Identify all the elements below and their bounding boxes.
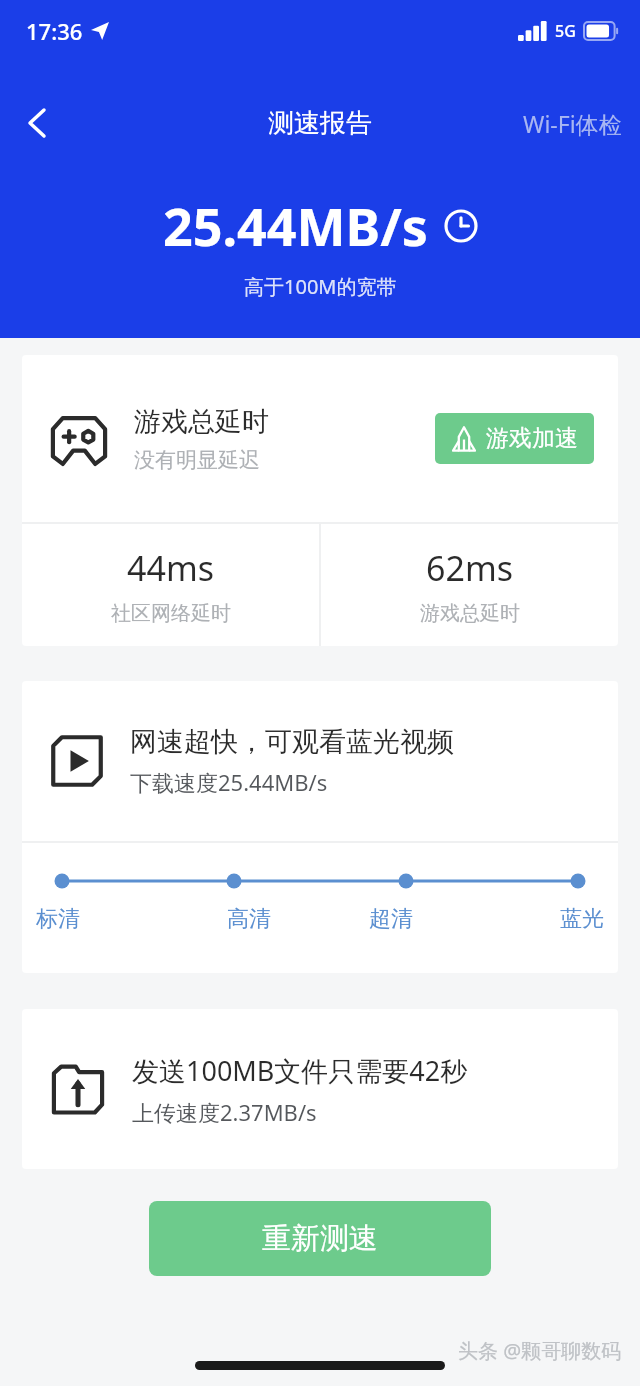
- staticText: 社区网络延时: [111, 601, 231, 626]
- button[interactable]: Back: [10, 96, 64, 150]
- staticText: 超清: [320, 905, 462, 933]
- staticText: 头条 @颗哥聊数码: [458, 1337, 622, 1364]
- staticText: 下载速度25.44MB/s: [130, 767, 328, 797]
- staticText: 标清: [36, 905, 178, 933]
- staticText: 44ms: [127, 545, 214, 591]
- button[interactable]: 网速超快，可观看蓝光视频: [22, 681, 618, 841]
- staticText: 蓝光: [462, 905, 604, 933]
- button[interactable]: 44ms: [22, 524, 319, 646]
- staticText: Wi-Fi体检: [523, 108, 622, 139]
- staticText: 游戏加速: [486, 424, 578, 453]
- button[interactable]: 发送100MB文件只需要42秒: [22, 1009, 618, 1169]
- button[interactable]: 游戏加速: [435, 413, 594, 464]
- staticText: 17:36: [26, 16, 83, 46]
- staticText: 游戏总延时: [420, 601, 520, 626]
- staticText: 高清: [178, 905, 320, 933]
- staticText: 游戏总延时: [134, 405, 269, 439]
- button[interactable]: 重新测速: [149, 1201, 491, 1276]
- staticText: 5G: [555, 20, 576, 42]
- staticText: 高于100M的宽带: [244, 273, 397, 300]
- staticText: 62ms: [426, 545, 513, 591]
- staticText: 重新测速: [262, 1220, 378, 1257]
- button[interactable]: History: [444, 209, 478, 243]
- staticText: 没有明显延迟: [134, 447, 260, 473]
- staticText: 测速报告: [268, 107, 372, 140]
- staticText: 发送100MB文件只需要42秒: [132, 1052, 468, 1089]
- staticText: 25.44MB/s: [163, 190, 428, 261]
- button[interactable]: 62ms: [321, 524, 618, 646]
- button[interactable]: 游戏总延时: [22, 355, 618, 522]
- staticText: 网速超快，可观看蓝光视频: [130, 725, 454, 759]
- button[interactable]: Wi-Fi体检: [505, 100, 640, 147]
- staticText: 上传速度2.37MB/s: [132, 1097, 317, 1127]
